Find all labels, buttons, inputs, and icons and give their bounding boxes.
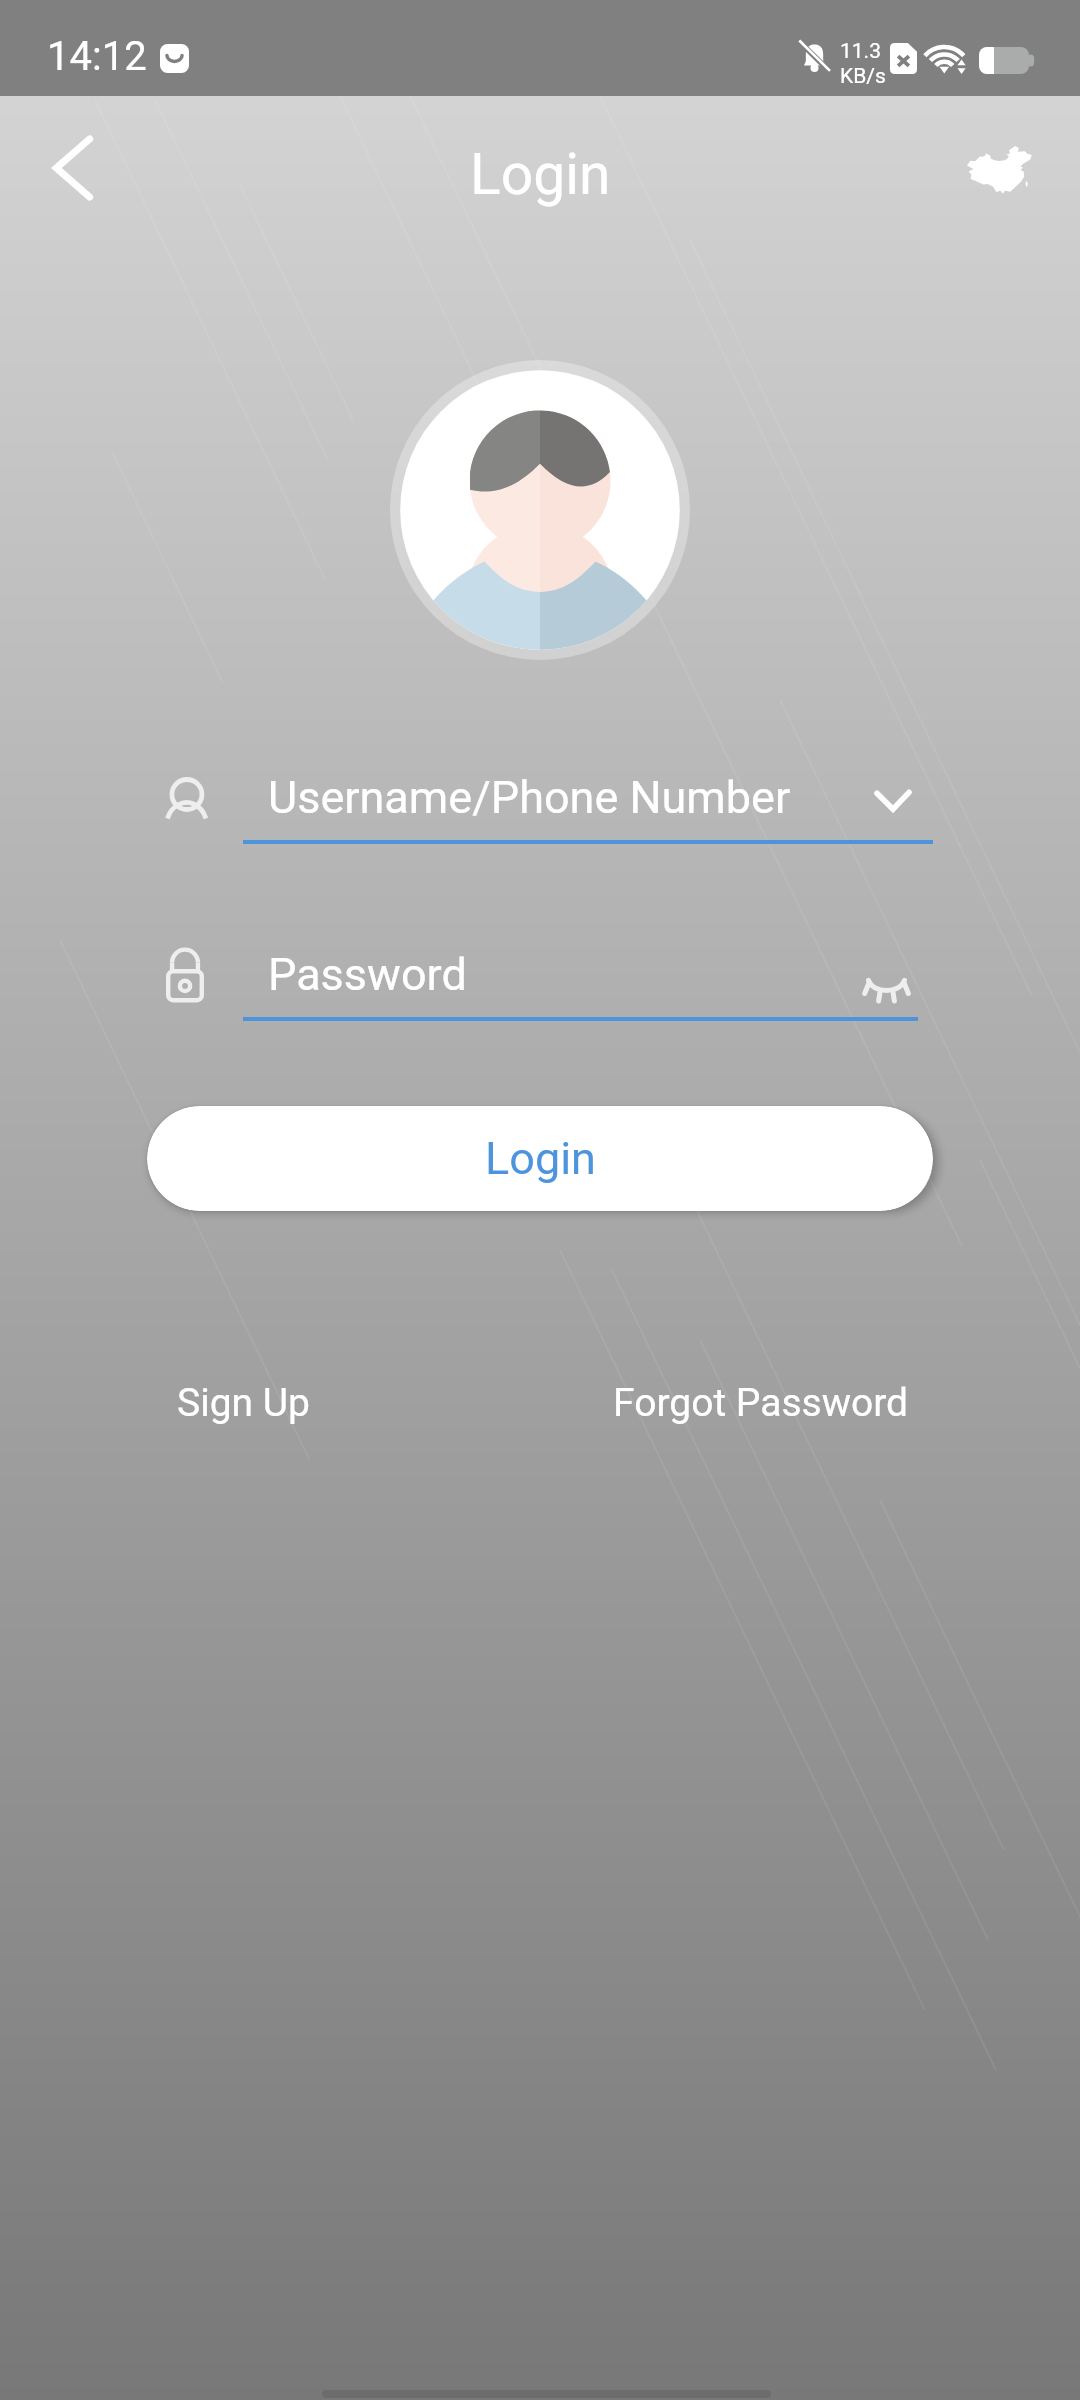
staticText: KB/s: [840, 64, 886, 89]
button[interactable]: Login: [147, 1106, 933, 1211]
staticText: Username/Phone Number: [268, 771, 791, 824]
staticText: 14:12: [47, 33, 147, 80]
button[interactable]: Back: [18, 113, 128, 223]
staticText: Sign Up: [177, 1380, 310, 1426]
staticText: Forgot Password: [613, 1380, 909, 1426]
button[interactable]: Forgot Password: [599, 1370, 923, 1436]
staticText: Password: [268, 948, 467, 1001]
button[interactable]: Sign Up: [163, 1370, 324, 1436]
staticText: 11.3: [840, 39, 881, 64]
staticText: Login: [485, 1132, 596, 1185]
staticText: Login: [470, 141, 611, 208]
button[interactable]: Region: [955, 126, 1045, 216]
